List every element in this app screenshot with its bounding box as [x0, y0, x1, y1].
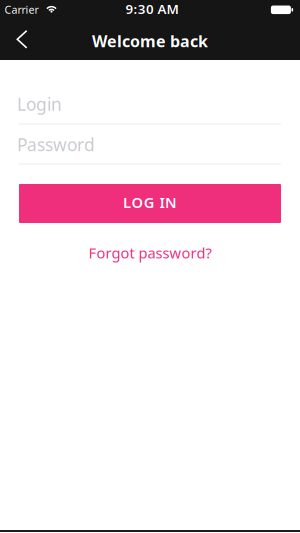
staticText: Carrier: [4, 2, 38, 17]
staticText: LOG IN: [123, 193, 177, 212]
staticText: 9:30 AM: [125, 0, 179, 18]
staticText: Login: [17, 92, 62, 115]
button[interactable]: Forgot password?: [88, 243, 211, 263]
staticText: Password: [17, 133, 95, 156]
button[interactable]: Back: [5, 19, 39, 59]
button[interactable]: LOG IN: [19, 184, 281, 223]
staticText: Forgot password?: [88, 243, 211, 263]
staticText: Welcome back: [92, 30, 208, 52]
